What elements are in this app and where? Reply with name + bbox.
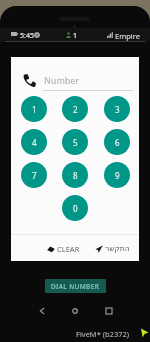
staticText: התקשר (105, 244, 130, 253)
staticText: 6 (115, 137, 120, 148)
staticText: 1 (32, 104, 37, 115)
staticText: FiveM* (b2372) (76, 329, 130, 339)
staticText: 3 (115, 104, 120, 115)
button[interactable]: 0 (62, 195, 88, 221)
staticText: 0 (73, 203, 78, 214)
button[interactable]: 6 (104, 129, 130, 155)
button[interactable]: 1 (21, 96, 47, 122)
staticText: 2 (73, 104, 78, 115)
button[interactable]: 2 (62, 96, 88, 122)
staticText: 7 (32, 170, 37, 181)
button[interactable]: CLEAR (38, 240, 88, 257)
button[interactable]: התקשר (90, 240, 135, 257)
staticText: 9 (115, 170, 120, 181)
staticText: Number (44, 74, 80, 86)
button[interactable]: 3 (104, 96, 130, 122)
button[interactable]: 4 (21, 129, 47, 155)
button[interactable]: Home (64, 300, 86, 322)
button[interactable]: Back (31, 300, 53, 322)
button[interactable]: 7 (21, 162, 47, 188)
staticText: CLEAR (57, 244, 80, 254)
staticText: 1 (73, 31, 78, 41)
staticText: DIAL NUMBER (51, 282, 100, 291)
button[interactable]: 5 (62, 129, 88, 155)
staticText: 4 (32, 137, 37, 148)
staticText: 5:45 (20, 31, 34, 41)
button[interactable]: 9 (104, 162, 130, 188)
button[interactable]: Recents (98, 300, 120, 322)
staticText: 5 (73, 137, 78, 148)
staticText: 8 (73, 170, 78, 181)
staticText: Empire (115, 31, 140, 41)
button[interactable]: DIAL NUMBER (45, 279, 106, 293)
button[interactable]: 8 (62, 162, 88, 188)
